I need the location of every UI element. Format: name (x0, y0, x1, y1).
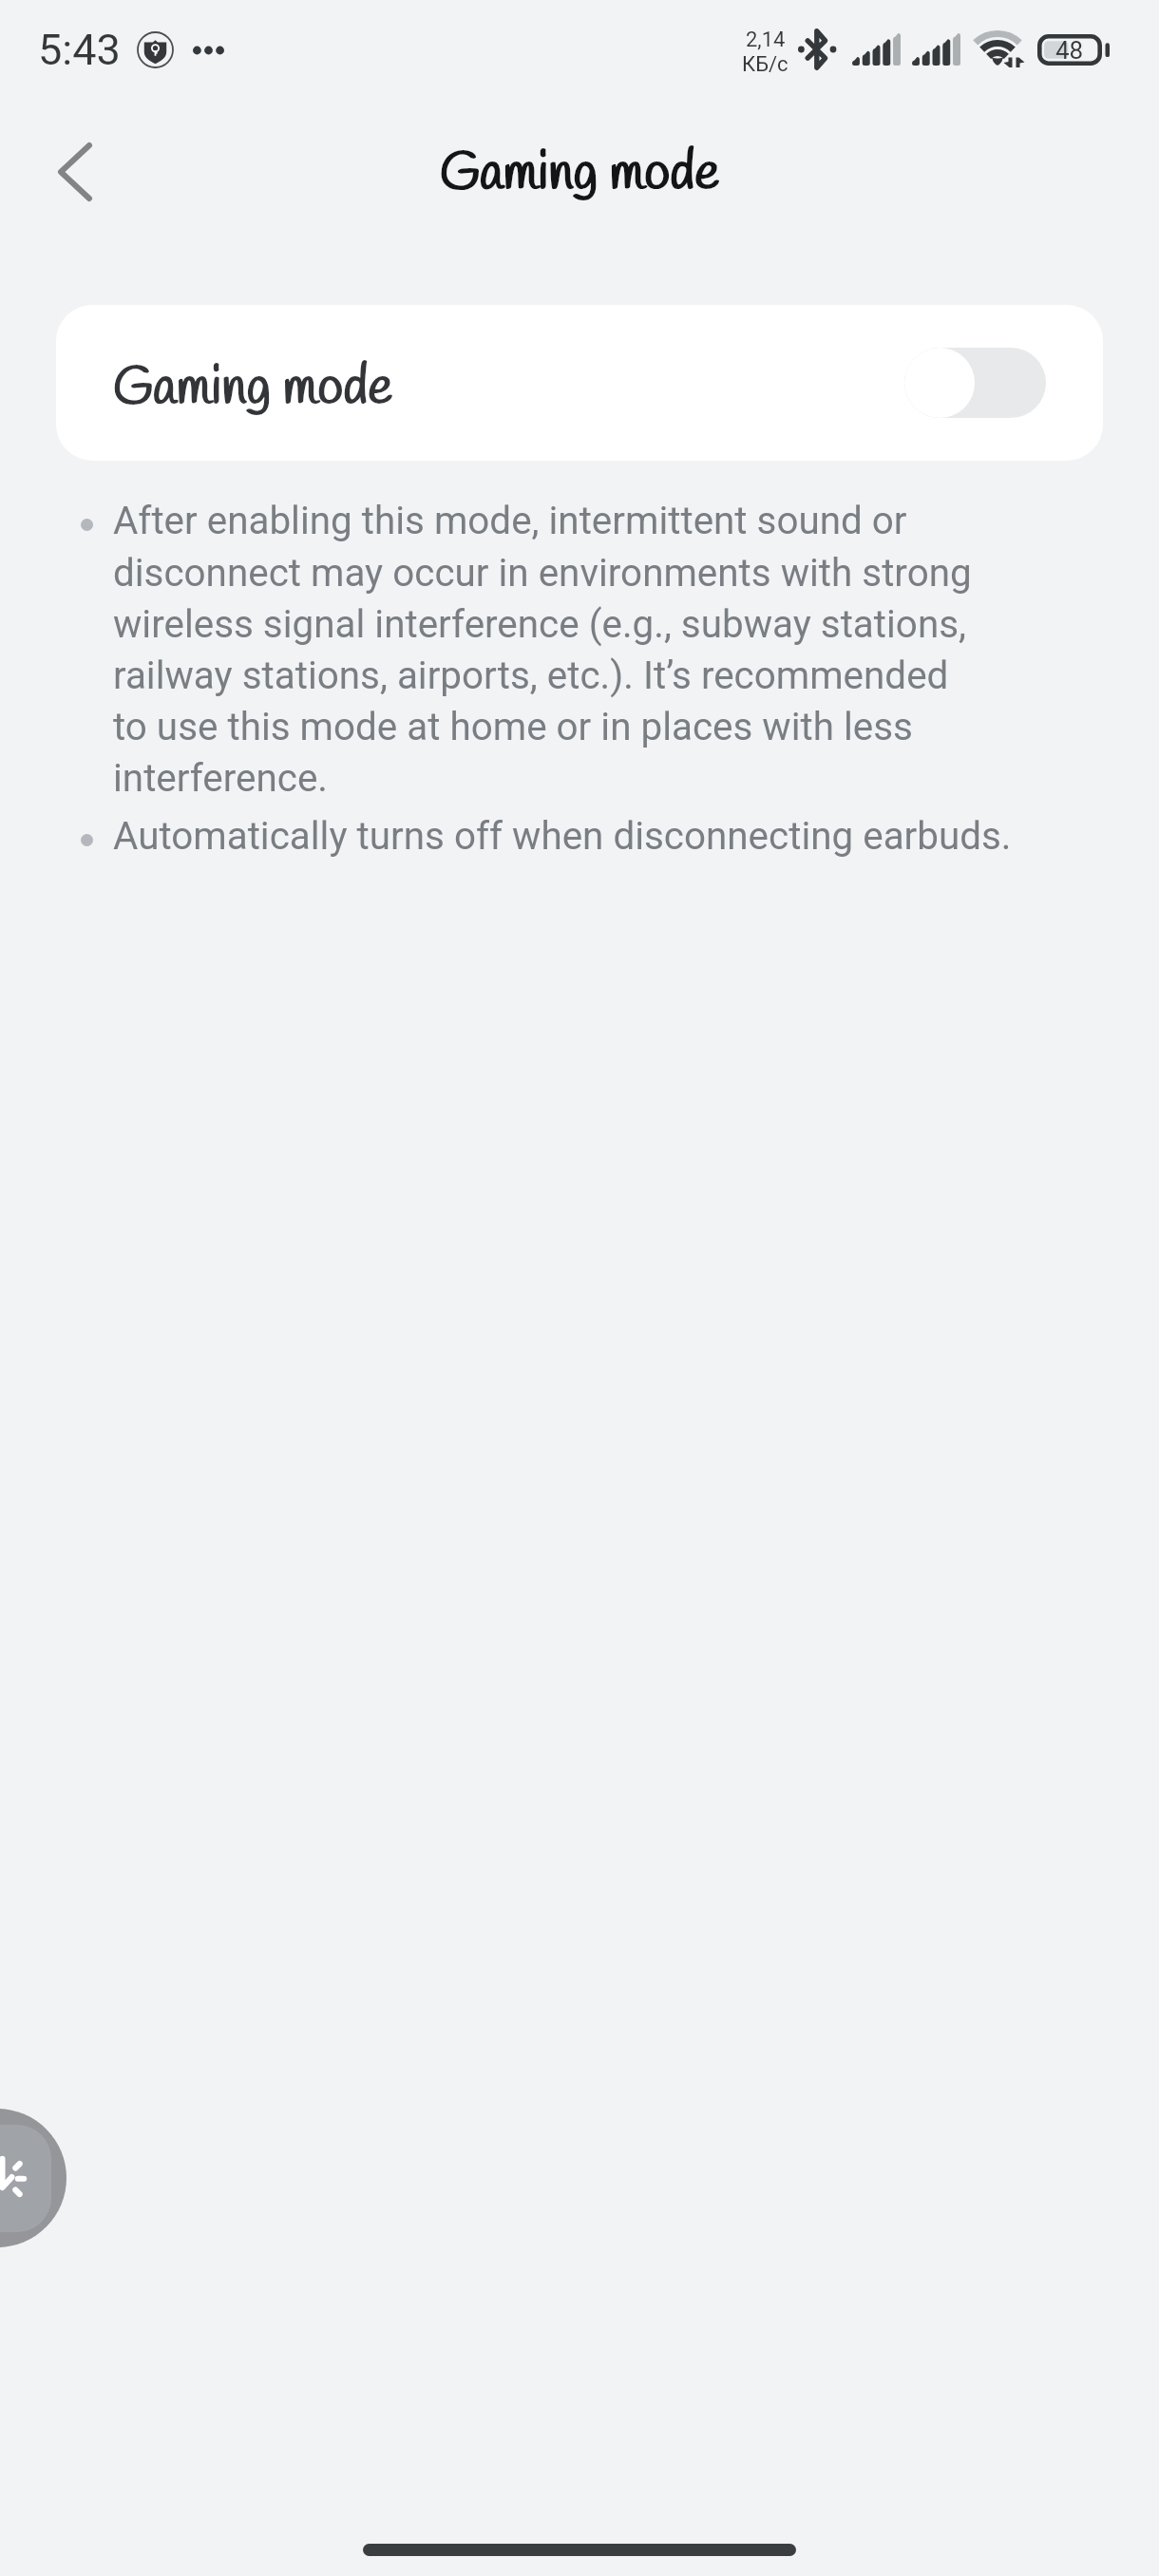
staticText: Gaming mode (113, 354, 393, 424)
staticText: 48 (1055, 36, 1084, 65)
button[interactable]: Back (22, 119, 128, 225)
staticText: 5:43 (38, 25, 121, 75)
staticText: After enabling this mode, intermittent s… (113, 499, 972, 801)
staticText: Automatically turns off when disconnecti… (113, 814, 1012, 859)
button[interactable]: Gaming mode (56, 305, 1103, 461)
staticText: Gaming mode (440, 140, 720, 209)
staticText: КБ/с (742, 52, 788, 77)
staticText: Gaming mode (440, 140, 720, 209)
staticText: Gaming mode (113, 354, 393, 424)
button[interactable]: Gaming mode switch (904, 348, 1046, 418)
button[interactable]: Assistive touch (0, 2109, 66, 2247)
staticText: 2,14 (746, 28, 786, 52)
